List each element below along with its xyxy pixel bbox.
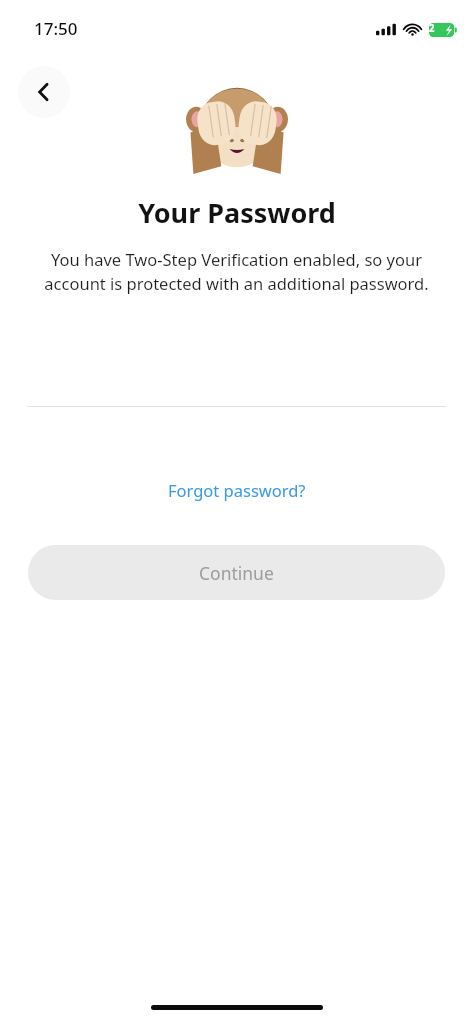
staticText: 17:50	[34, 17, 78, 40]
staticText: You have Two-Step Verification enabled, …	[44, 248, 429, 295]
staticText: Forgot password?	[168, 479, 306, 501]
button[interactable]: Continue	[28, 545, 445, 600]
button[interactable]: Back	[18, 66, 70, 118]
staticText: 92	[423, 21, 435, 35]
staticText: Continue	[199, 561, 274, 585]
staticText: Your Password	[138, 194, 336, 231]
button[interactable]: Forgot password?	[158, 474, 316, 506]
